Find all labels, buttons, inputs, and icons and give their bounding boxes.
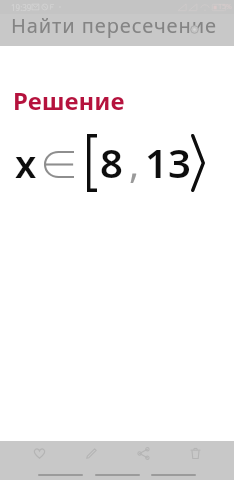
staticText: Найти пересечение [11, 12, 217, 39]
button[interactable]: Share [117, 441, 169, 466]
staticText: 8 [100, 135, 123, 189]
staticText: x [15, 137, 37, 189]
staticText: 15% [218, 2, 232, 12]
staticText: 13 [145, 135, 191, 189]
staticText: Решение [13, 84, 125, 117]
staticText: , [129, 137, 140, 189]
staticText: 19:39 [11, 2, 32, 13]
button[interactable]: Найти пересечение [0, 14, 234, 46]
